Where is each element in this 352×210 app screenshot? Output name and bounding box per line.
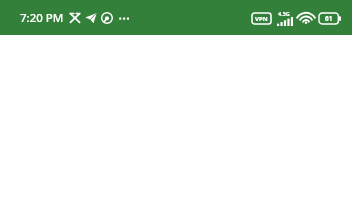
staticText: 61 — [325, 14, 333, 23]
staticText: VPN — [255, 15, 268, 23]
staticText: 4.5G — [278, 10, 290, 17]
staticText: 7:20 PM — [20, 10, 64, 26]
